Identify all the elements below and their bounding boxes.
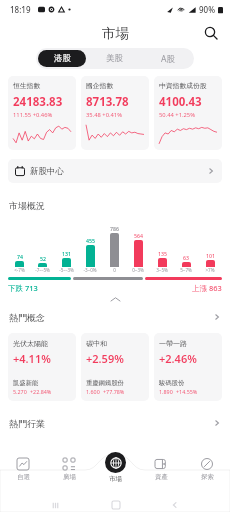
staticText: 24183.83	[13, 94, 63, 110]
staticText: 碳中和	[86, 339, 107, 348]
staticText: 重慶鋼鐵股份	[86, 379, 124, 387]
button[interactable]: Collapse	[8, 293, 222, 306]
button[interactable]: 市場	[105, 452, 126, 483]
staticText: 52	[40, 255, 46, 262]
staticText: 63	[183, 254, 189, 261]
staticText: 恒生指數	[13, 81, 41, 90]
staticText: 凱盛新能	[13, 379, 39, 387]
staticText: 35.48 +0.41%	[86, 111, 122, 119]
staticText: 1.600	[86, 388, 100, 395]
staticText: 自選	[17, 473, 30, 481]
button[interactable]: 美股	[90, 50, 139, 67]
staticText: 101	[206, 252, 215, 259]
button[interactable]: 光伏太陽能	[8, 333, 76, 401]
button[interactable]: 熱門行業	[9, 412, 221, 434]
staticText: 135	[158, 250, 167, 257]
staticText: 中資指數成份股	[159, 81, 207, 90]
button[interactable]: 廣場	[46, 456, 92, 481]
staticText: 市場概況	[9, 200, 45, 211]
staticText: 90%	[199, 4, 215, 15]
button[interactable]: 資產	[138, 456, 184, 481]
staticText: +2.59%	[86, 351, 124, 366]
staticText: 光伏太陽能	[13, 339, 48, 348]
staticText: 131	[62, 250, 71, 257]
staticText: 564	[134, 232, 143, 239]
button[interactable]: 新股中心	[8, 159, 222, 183]
button[interactable]: 探索	[184, 456, 230, 481]
staticText: 786	[110, 225, 119, 232]
staticText: 國企指數	[86, 81, 114, 90]
staticText: 下跌 713	[8, 283, 38, 293]
staticText: 18:19	[10, 4, 31, 15]
staticText: 熱門概念	[9, 312, 45, 323]
staticText: 0~3%	[132, 267, 144, 273]
staticText: +4.11%	[13, 351, 51, 366]
button[interactable]: 恒生指數	[8, 76, 76, 150]
button[interactable]: 中資指數成份股	[154, 76, 222, 150]
button[interactable]: 國企指數	[81, 76, 149, 150]
staticText: >7%	[205, 267, 215, 273]
staticText: +2.46%	[159, 351, 197, 366]
staticText: 4100.43	[159, 94, 202, 110]
staticText: 50.44 +1.25%	[159, 111, 195, 119]
staticText: 455	[86, 237, 95, 244]
staticText: 市場	[109, 475, 122, 483]
staticText: 熱門行業	[9, 418, 45, 429]
staticText: 廣場	[63, 473, 76, 481]
staticText: 一帶一路	[159, 339, 187, 348]
staticText: 美股	[106, 53, 123, 64]
staticText: -7~-5%	[35, 267, 50, 273]
staticText: 5.270	[13, 388, 27, 395]
staticText: 新股中心	[30, 166, 64, 177]
staticText: <-7%	[14, 267, 25, 273]
staticText: +14.55%	[176, 388, 198, 395]
staticText: 74	[17, 253, 23, 260]
button[interactable]: 熱門概念	[9, 306, 221, 328]
button[interactable]: 港股	[38, 50, 86, 67]
staticText: 上漲 863	[192, 283, 222, 293]
button[interactable]: 一帶一路	[154, 333, 222, 401]
staticText: +22.84%	[30, 388, 52, 395]
staticText: 市場	[102, 25, 129, 42]
staticText: 5~7%	[180, 267, 192, 273]
staticText: +77.78%	[103, 388, 125, 395]
staticText: -5~-3%	[59, 267, 74, 273]
staticText: 3~5%	[156, 267, 168, 273]
staticText: 8713.78	[86, 94, 129, 110]
button[interactable]: A股	[143, 50, 192, 67]
button[interactable]: Search	[200, 22, 222, 44]
staticText: 0	[113, 267, 116, 273]
staticText: 探索	[201, 473, 214, 481]
staticText: 1.890	[159, 388, 173, 395]
staticText: A股	[161, 53, 175, 65]
staticText: -3~0%	[83, 267, 97, 273]
staticText: 資產	[155, 473, 168, 481]
staticText: 111.55 +0.46%	[13, 111, 53, 119]
button[interactable]: 碳中和	[81, 333, 149, 401]
staticText: 駿碼股份	[159, 379, 185, 387]
button[interactable]: 自選	[0, 456, 46, 481]
staticText: 港股	[54, 53, 71, 64]
